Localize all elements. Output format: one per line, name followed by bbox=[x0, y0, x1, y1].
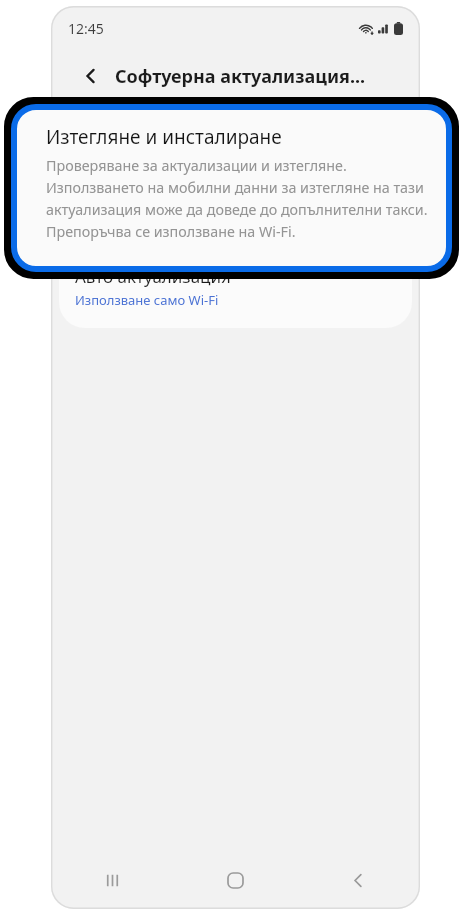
button[interactable]: Авто актуализация bbox=[59, 265, 412, 325]
staticText: Изтегляне и инсталиране bbox=[46, 124, 282, 150]
staticText: Използване само Wi-Fi bbox=[75, 291, 219, 309]
button[interactable]: Back bbox=[297, 851, 420, 909]
staticText: 12:45 bbox=[68, 19, 104, 38]
button[interactable]: Recents bbox=[51, 851, 174, 909]
staticText: Проверяване за актуализации и изтегляне.… bbox=[75, 146, 400, 247]
staticText: Софтуерна актуализация... bbox=[115, 64, 366, 89]
button[interactable]: Back bbox=[75, 60, 107, 92]
button[interactable]: Home bbox=[174, 851, 297, 909]
button[interactable]: Изтегляне и инсталиране bbox=[13, 106, 450, 270]
staticText: Проверяване за актуализации и изтегляне.… bbox=[46, 156, 428, 241]
button[interactable]: Изтегляне и инсталиране bbox=[59, 102, 412, 257]
staticText: Изтегляне и инсталиране bbox=[75, 118, 286, 141]
staticText: Авто актуализация bbox=[75, 265, 231, 288]
